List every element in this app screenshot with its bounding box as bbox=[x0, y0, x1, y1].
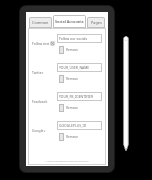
button[interactable]: Pages bbox=[87, 17, 105, 28]
staticText: Follow our socials bbox=[59, 36, 88, 41]
button[interactable]: Google+ bbox=[30, 116, 104, 145]
button[interactable]: Remove bbox=[59, 104, 79, 112]
button[interactable]: GOOGLEPLUS_ID bbox=[57, 121, 102, 130]
button[interactable]: Social Accounts bbox=[53, 15, 86, 28]
staticText: Pages bbox=[91, 20, 102, 25]
button[interactable]: Common bbox=[29, 17, 52, 28]
staticText: Common bbox=[32, 20, 49, 25]
staticText: Twitter bbox=[32, 70, 44, 75]
staticText: Social Accounts bbox=[55, 19, 84, 24]
staticText: Remove bbox=[66, 106, 79, 110]
staticText: Remove bbox=[66, 135, 79, 139]
other: Info bbox=[51, 42, 54, 45]
staticText: Follow text bbox=[32, 41, 50, 46]
button[interactable]: YOUR_USER_NAME bbox=[57, 63, 102, 72]
staticText: Remove bbox=[66, 48, 79, 52]
other: Stylus bbox=[123, 34, 129, 151]
button[interactable]: YOUR_FB_IDENTIFIER bbox=[57, 92, 102, 101]
staticText: Google+ bbox=[32, 128, 46, 133]
staticText: YOUR_USER_NAME bbox=[59, 65, 90, 70]
button[interactable]: Remove bbox=[59, 75, 79, 83]
button[interactable]: Follow our socials bbox=[57, 34, 102, 43]
button[interactable]: Follow text bbox=[30, 29, 104, 58]
button[interactable]: Remove bbox=[59, 133, 79, 141]
staticText: I cannot relocate text boxes like axis i… bbox=[30, 160, 104, 163]
button[interactable]: Twitter bbox=[30, 58, 104, 87]
staticText: GOOGLEPLUS_ID bbox=[59, 123, 87, 128]
staticText: Remove bbox=[66, 77, 79, 81]
staticText: Facebook bbox=[32, 99, 48, 104]
button[interactable]: Facebook bbox=[30, 87, 104, 116]
staticText: YOUR_FB_IDENTIFIER bbox=[59, 94, 94, 99]
button[interactable]: Remove bbox=[59, 46, 79, 54]
